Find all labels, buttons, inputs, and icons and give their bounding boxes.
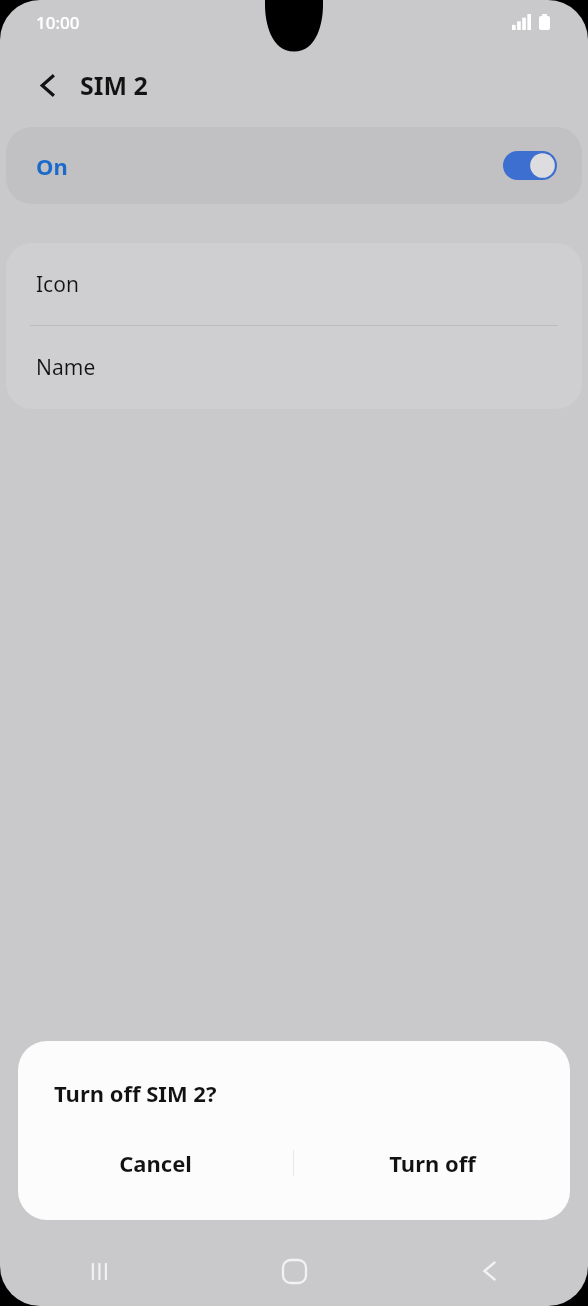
button[interactable]: On: [6, 127, 582, 204]
staticText: On: [36, 151, 68, 181]
button[interactable]: Back: [25, 62, 71, 108]
button[interactable]: Name: [6, 326, 582, 409]
button[interactable]: Cancel: [18, 1128, 293, 1198]
button[interactable]: Recents: [0, 1236, 196, 1306]
staticText: Turn off SIM 2?: [54, 1078, 217, 1108]
staticText: Cancel: [119, 1148, 192, 1178]
staticText: Icon: [36, 270, 79, 299]
button[interactable]: Home: [196, 1236, 392, 1306]
button[interactable]: Back: [392, 1236, 588, 1306]
button[interactable]: Turn off: [294, 1128, 570, 1198]
button[interactable]: Icon: [6, 243, 582, 325]
staticText: SIM 2: [80, 68, 148, 102]
staticText: Name: [36, 353, 96, 382]
staticText: Turn off: [389, 1148, 476, 1178]
staticText: 10:00: [36, 11, 80, 34]
